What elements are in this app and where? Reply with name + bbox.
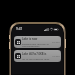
staticText: 1m ago [52, 55, 60, 58]
staticText: Lake 467to7.0KB is being saved [22, 52, 51, 56]
other: App icon [15, 53, 21, 59]
staticText: Lake is now recharged! [22, 37, 51, 41]
button[interactable]: App icon [14, 50, 61, 62]
staticText: up to the meeting read. [22, 57, 50, 60]
button[interactable]: App icon [14, 36, 61, 48]
staticText: 2m ago [52, 41, 60, 44]
staticText: 9:41 [16, 27, 23, 31]
staticText: Brewing will resume at the breakpoint. [22, 42, 51, 48]
other: App icon [15, 39, 21, 45]
